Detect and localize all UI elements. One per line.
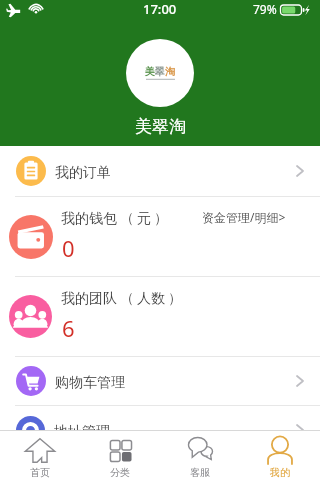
staticText: 6: [62, 313, 75, 343]
button[interactable]: 首页: [0, 431, 80, 480]
button[interactable]: 分类: [80, 431, 160, 480]
button[interactable]: 我的订单: [0, 146, 320, 196]
staticText: 购物车管理: [55, 374, 125, 392]
staticText: 资金管理/明细>: [202, 209, 286, 225]
staticText: 我的团队: [61, 290, 117, 308]
staticText: 客服: [190, 466, 210, 479]
staticText: 我的钱包: [61, 210, 117, 228]
button[interactable]: 购物车管理: [0, 357, 320, 405]
staticText: ）: [168, 290, 182, 308]
staticText: 翠: [155, 65, 165, 78]
staticText: 17:00: [143, 0, 177, 18]
button[interactable]: 我的团队: [0, 277, 320, 356]
staticText: 分类: [110, 466, 130, 479]
staticText: 人数: [137, 290, 165, 308]
staticText: 79%: [253, 1, 277, 17]
staticText: 淘: [165, 65, 175, 78]
button[interactable]: 我的钱包: [0, 197, 320, 276]
staticText: （: [120, 290, 134, 308]
staticText: ）: [154, 210, 168, 228]
button[interactable]: 客服: [160, 431, 240, 480]
button[interactable]: Avatar: [126, 39, 194, 107]
button[interactable]: 地址管理: [0, 406, 320, 454]
staticText: 地址管理: [54, 423, 110, 441]
staticText: 首页: [30, 466, 50, 479]
staticText: 美翠淘: [135, 116, 186, 137]
staticText: 美: [145, 65, 155, 78]
staticText: （: [120, 210, 134, 228]
staticText: 我的订单: [55, 164, 111, 182]
button[interactable]: 我的: [240, 431, 320, 480]
staticText: 我的: [270, 466, 290, 479]
staticText: 元: [137, 210, 151, 228]
staticText: 0: [62, 233, 75, 263]
